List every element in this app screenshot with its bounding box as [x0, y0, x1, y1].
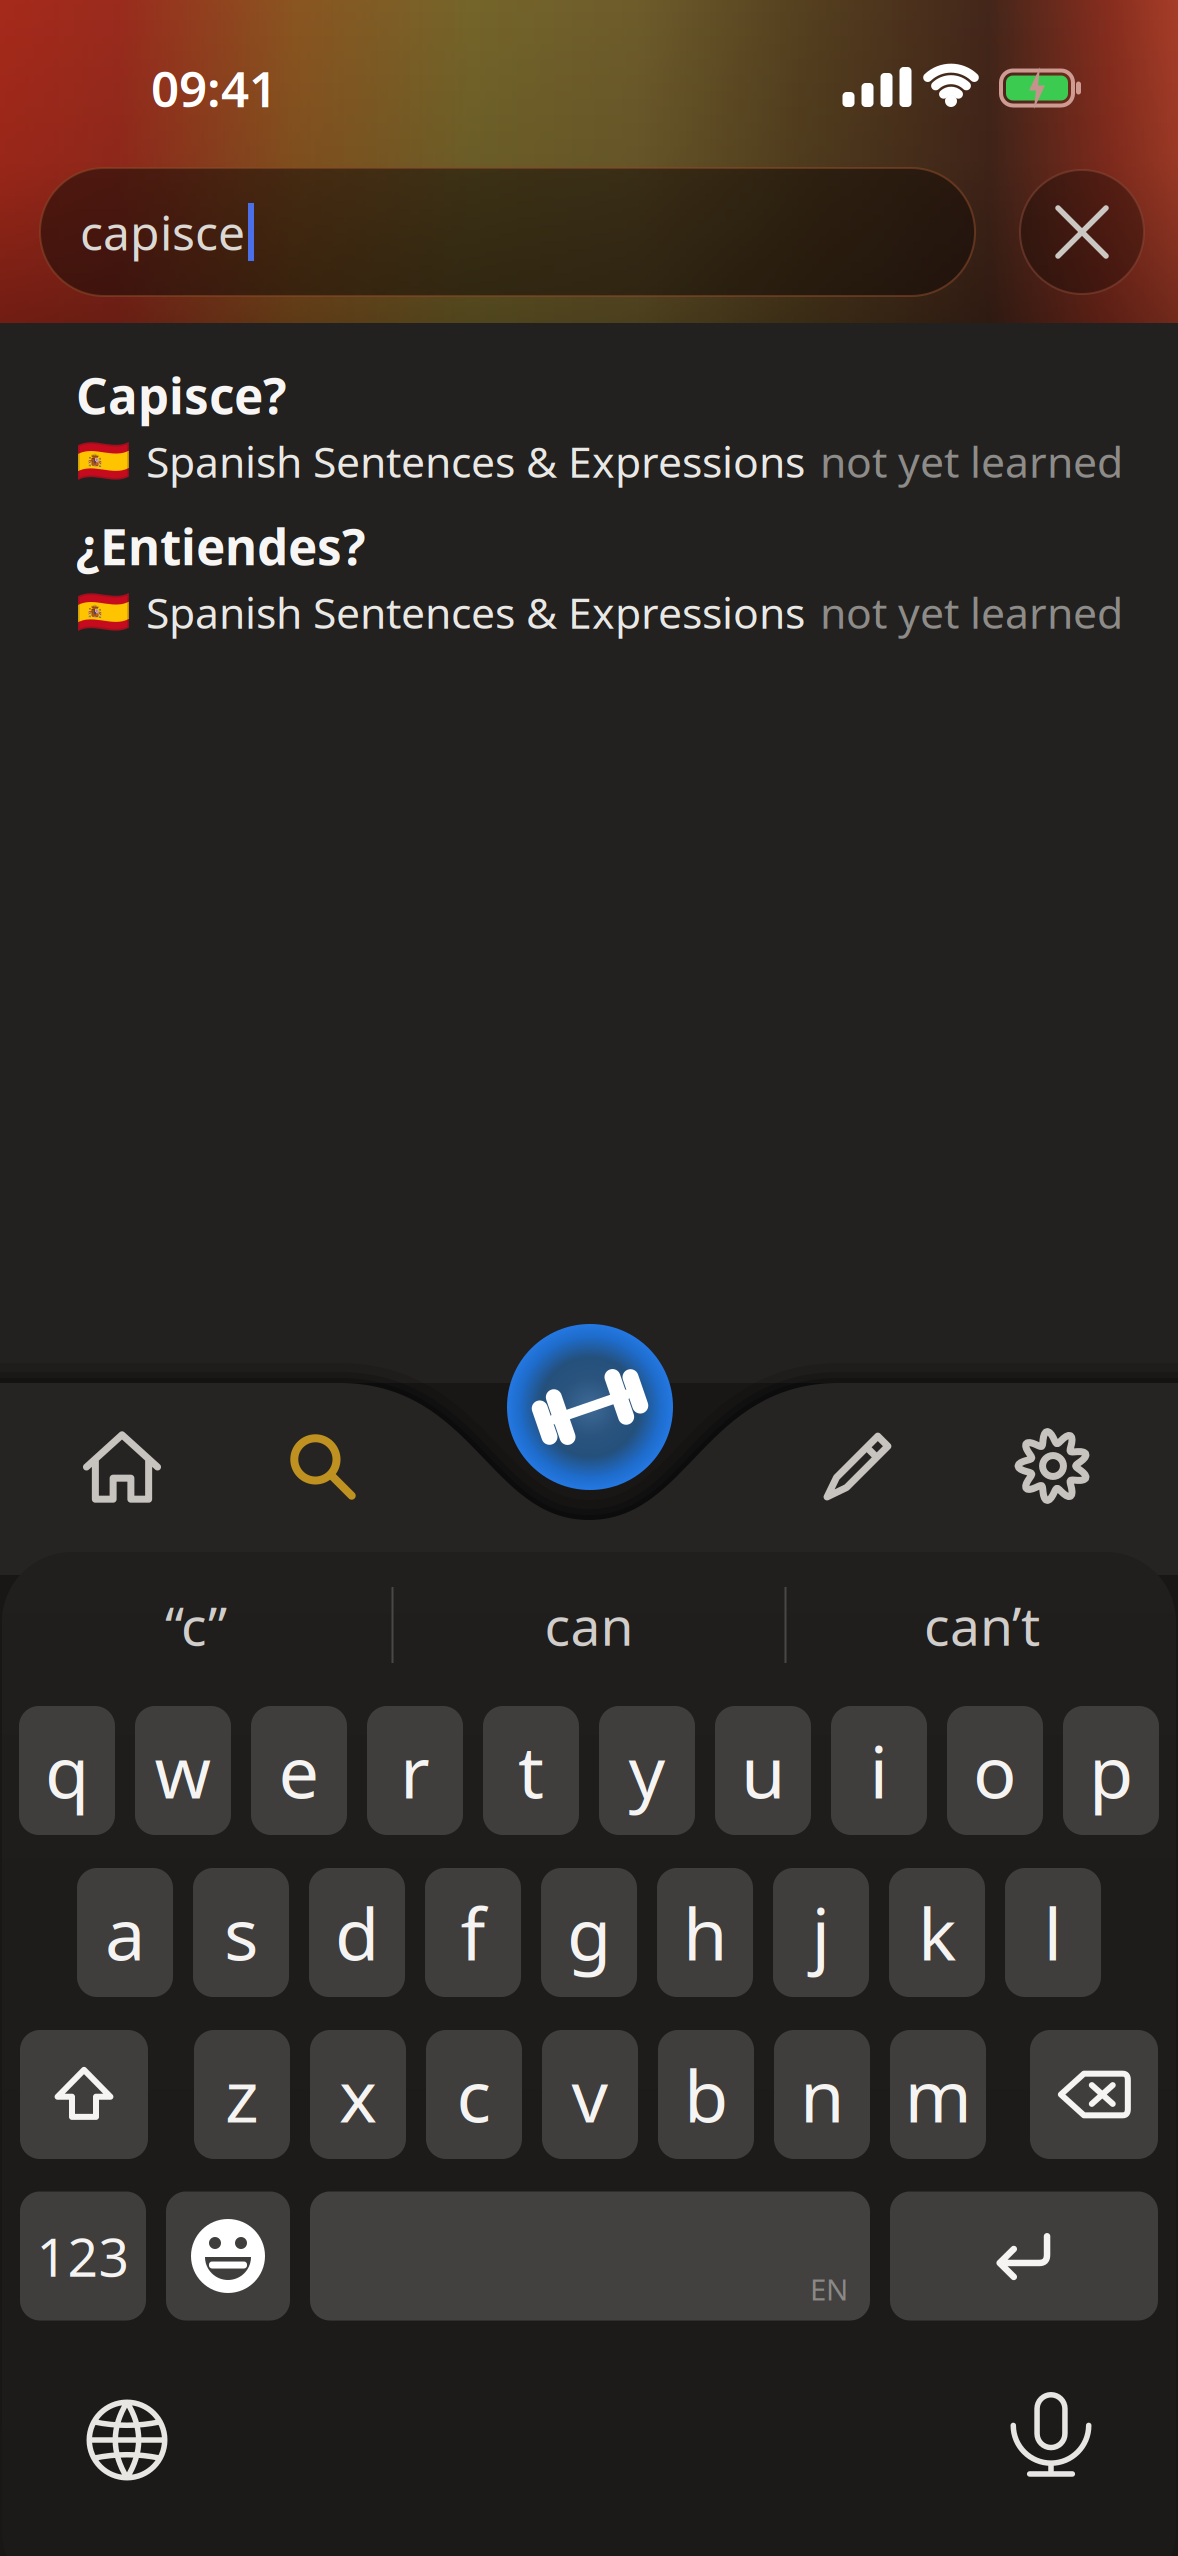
staticText: w [154, 1723, 211, 1818]
staticText: z [225, 2047, 259, 2142]
button[interactable]: r [367, 1706, 463, 1835]
staticText: 09:41 [151, 55, 277, 121]
button[interactable]: o [947, 1706, 1043, 1835]
staticText: can’t [924, 1590, 1040, 1660]
staticText: d [335, 1885, 379, 1980]
staticText: u [741, 1723, 785, 1818]
staticText: e [278, 1723, 319, 1818]
staticText: p [1089, 1723, 1133, 1818]
staticText: 123 [36, 2221, 129, 2291]
button[interactable]: s [193, 1868, 289, 1997]
staticText: t [518, 1723, 544, 1818]
staticText: Spanish Sentences & Expressions [146, 584, 805, 641]
staticText: capisce [80, 200, 245, 264]
staticText: x [339, 2047, 377, 2142]
staticText: 🇪🇸 [76, 436, 131, 486]
button[interactable]: x [310, 2030, 406, 2159]
button[interactable] [70, 2383, 184, 2497]
staticText: v [571, 2047, 608, 2142]
staticText: y [628, 1723, 665, 1818]
button[interactable]: p [1063, 1706, 1159, 1835]
staticText: n [800, 2047, 844, 2142]
staticText: ¿Entiendes? [76, 513, 366, 579]
button[interactable]: l [1005, 1868, 1101, 1997]
button[interactable]: EN [310, 2191, 870, 2320]
button[interactable]: g [541, 1868, 637, 1997]
button[interactable] [1020, 170, 1144, 294]
button[interactable]: t [483, 1706, 579, 1835]
staticText: j [811, 1885, 830, 1980]
staticText: Capisce? [76, 362, 287, 428]
button[interactable]: can’t [802, 1580, 1162, 1670]
button[interactable]: u [715, 1706, 811, 1835]
button[interactable]: y [599, 1706, 695, 1835]
staticText: not yet learned [820, 433, 1123, 490]
button[interactable]: j [773, 1868, 869, 1997]
button[interactable]: d [309, 1868, 405, 1997]
button[interactable] [20, 2030, 148, 2159]
button[interactable]: c [426, 2030, 522, 2159]
staticText: g [567, 1885, 611, 1980]
button[interactable]: e [251, 1706, 347, 1835]
staticText: m [904, 2047, 971, 2142]
staticText: “c” [165, 1590, 227, 1660]
staticText: Spanish Sentences & Expressions [146, 433, 805, 490]
button[interactable]: a [77, 1868, 173, 1997]
button[interactable]: i [831, 1706, 927, 1835]
button[interactable] [890, 2191, 1158, 2320]
button[interactable] [803, 1413, 911, 1521]
staticText: q [45, 1723, 89, 1818]
staticText: k [918, 1885, 956, 1980]
button[interactable]: ¿Entiendes? [76, 513, 1136, 641]
staticText: can [544, 1590, 633, 1660]
button[interactable]: h [657, 1868, 753, 1997]
staticText: l [1043, 1885, 1062, 1980]
button[interactable] [166, 2191, 290, 2320]
staticText: f [460, 1885, 485, 1980]
button[interactable] [994, 2377, 1108, 2497]
button[interactable]: can [409, 1580, 769, 1670]
staticText: not yet learned [820, 584, 1123, 641]
button[interactable]: 123 [20, 2191, 146, 2320]
button[interactable] [507, 1324, 673, 1490]
staticText: b [684, 2047, 728, 2142]
button[interactable] [65, 1412, 179, 1522]
staticText: c [456, 2047, 491, 2142]
staticText: a [105, 1885, 145, 1980]
button[interactable]: z [194, 2030, 290, 2159]
button[interactable]: “c” [16, 1580, 376, 1670]
button[interactable]: m [890, 2030, 986, 2159]
button[interactable]: n [774, 2030, 870, 2159]
staticText: EN [810, 2269, 848, 2308]
staticText: o [973, 1723, 1017, 1818]
button[interactable] [1030, 2030, 1158, 2159]
staticText: h [683, 1885, 727, 1980]
button[interactable]: w [135, 1706, 231, 1835]
button[interactable]: Capisce? [76, 362, 1136, 490]
staticText: i [869, 1723, 888, 1818]
button[interactable]: f [425, 1868, 521, 1997]
staticText: 🇪🇸 [76, 587, 131, 637]
button[interactable] [269, 1413, 375, 1519]
button[interactable]: b [658, 2030, 754, 2159]
button[interactable] [997, 1410, 1109, 1522]
staticText: r [400, 1723, 430, 1818]
button[interactable]: v [542, 2030, 638, 2159]
staticText: s [224, 1885, 258, 1980]
button[interactable]: capisce [40, 168, 975, 296]
button[interactable]: q [19, 1706, 115, 1835]
button[interactable]: k [889, 1868, 985, 1997]
